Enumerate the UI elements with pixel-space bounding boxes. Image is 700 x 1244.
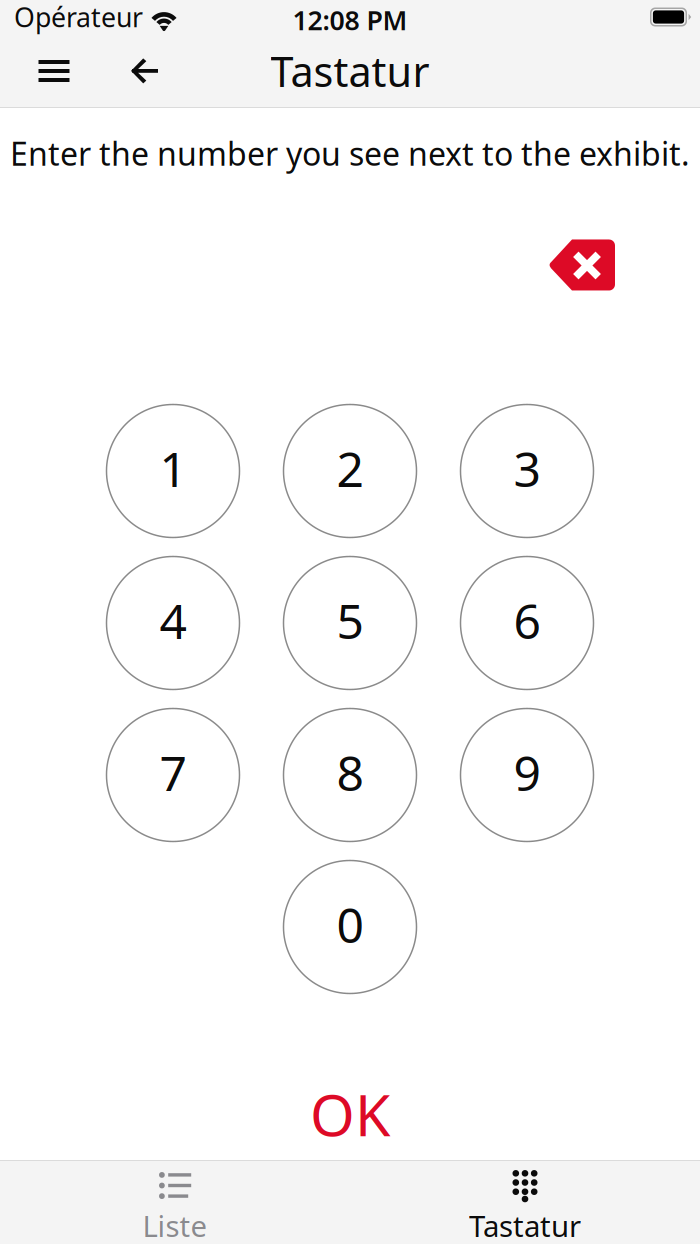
button[interactable]: 3 <box>460 404 593 537</box>
button[interactable]: 9 <box>460 708 593 841</box>
staticText: 3 <box>513 437 540 500</box>
staticText: 12:08 PM <box>292 2 407 38</box>
staticText: 0 <box>336 893 363 956</box>
button[interactable]: 6 <box>460 556 593 689</box>
button[interactable]: Liste <box>0 1160 350 1243</box>
staticText: 4 <box>159 589 186 652</box>
staticText: 8 <box>336 741 363 804</box>
staticText: Liste <box>142 1206 207 1244</box>
button[interactable]: 1 <box>106 404 239 537</box>
button[interactable]: Tastatur <box>350 1160 700 1243</box>
staticText: 9 <box>513 741 540 804</box>
button[interactable]: 8 <box>283 708 416 841</box>
staticText: 6 <box>513 589 540 652</box>
staticText: Tastatur <box>270 44 429 98</box>
button[interactable]: 5 <box>283 556 416 689</box>
button[interactable]: 4 <box>106 556 239 689</box>
staticText: 5 <box>336 589 363 652</box>
staticText: 2 <box>336 437 363 500</box>
button[interactable]: Delete <box>548 239 615 290</box>
staticText: Tastatur <box>469 1206 581 1244</box>
staticText: 1 <box>159 437 186 500</box>
button[interactable]: Menu <box>23 40 85 102</box>
staticText: Opérateur <box>14 0 143 35</box>
staticText: OK <box>310 1076 390 1152</box>
staticText: 7 <box>159 741 186 804</box>
button[interactable]: 2 <box>283 404 416 537</box>
button[interactable]: 7 <box>106 708 239 841</box>
staticText: Enter the number you see next to the exh… <box>10 132 690 174</box>
button[interactable]: 0 <box>283 860 416 993</box>
button[interactable]: Back <box>115 40 173 102</box>
button[interactable]: OK <box>310 1084 390 1144</box>
